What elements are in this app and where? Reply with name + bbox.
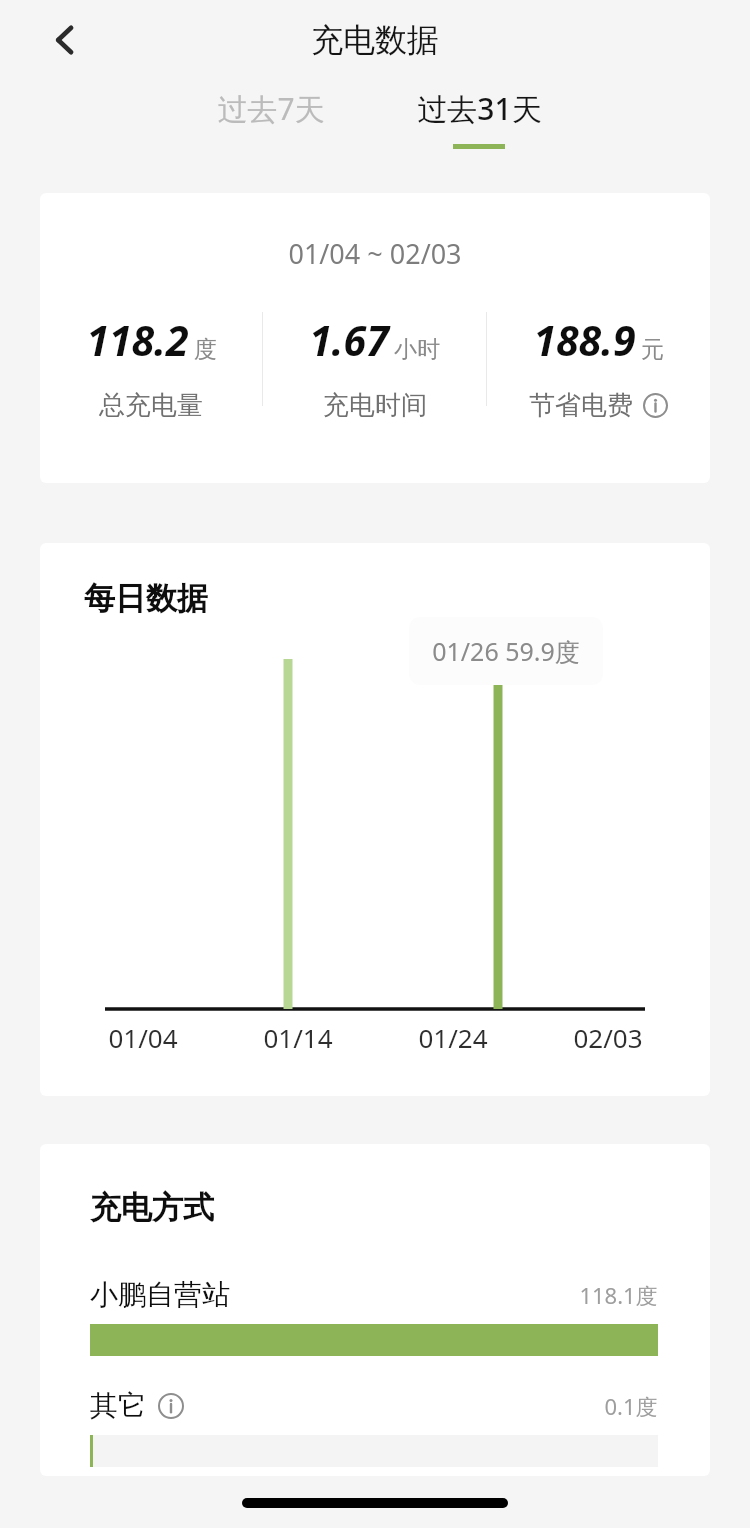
staticText: 01/24 — [418, 1020, 488, 1055]
staticText: 其它 — [90, 1388, 146, 1423]
staticText: 01/26 59.9度 — [432, 634, 580, 668]
staticText: 01/04 ~ 02/03 — [288, 235, 462, 272]
staticText: 0.1度 — [604, 1391, 658, 1421]
staticText: 118.1度 — [579, 1280, 658, 1310]
staticText: 每日数据 — [84, 579, 208, 618]
staticText: 元 — [641, 335, 664, 364]
staticText: 小鹏自营站 — [90, 1277, 230, 1312]
button[interactable]: Info — [158, 1393, 184, 1419]
button[interactable]: Info — [643, 393, 668, 418]
staticText: 充电数据 — [311, 20, 439, 60]
button[interactable]: Back — [36, 11, 94, 69]
button[interactable]: 其它 — [90, 1388, 658, 1467]
button[interactable]: 过去31天 — [375, 80, 583, 157]
staticText: 过去31天 — [417, 88, 542, 129]
staticText: 1.67 — [309, 312, 389, 368]
staticText: 01/14 — [263, 1020, 333, 1055]
staticText: 188.9 — [533, 312, 636, 368]
staticText: 小时 — [394, 335, 440, 364]
button[interactable]: 过去7天 — [167, 80, 375, 157]
staticText: 节省电费 — [529, 389, 633, 422]
staticText: 02/03 — [573, 1020, 643, 1055]
staticText: 充电时间 — [323, 389, 427, 422]
staticText: 充电方式 — [90, 1188, 214, 1227]
staticText: 118.2 — [86, 312, 189, 368]
staticText: 过去7天 — [217, 88, 325, 129]
staticText: 01/04 — [108, 1020, 178, 1055]
staticText: 度 — [194, 335, 217, 364]
button[interactable]: 小鹏自营站 — [90, 1277, 658, 1356]
staticText: 总充电量 — [99, 389, 203, 422]
